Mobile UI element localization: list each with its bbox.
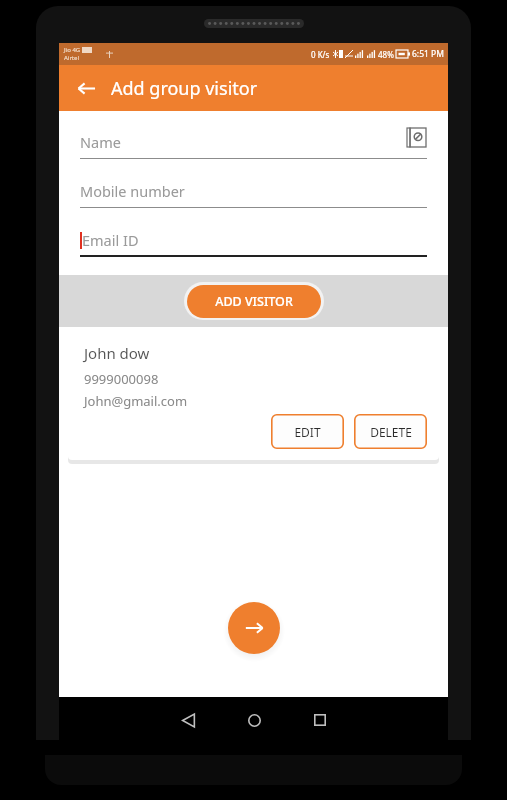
button[interactable]: John dow <box>68 332 439 460</box>
staticText: 6:51 PM <box>412 48 444 60</box>
staticText: DELETE <box>370 424 412 440</box>
button[interactable]: Pick contact <box>405 126 427 148</box>
staticText: Airtel <box>64 54 79 62</box>
button[interactable]: ADD VISITOR <box>187 285 321 318</box>
button[interactable]: Home <box>232 698 276 742</box>
staticText: ADD VISITOR <box>215 293 293 310</box>
button[interactable]: EDIT <box>271 414 344 449</box>
button[interactable]: Back <box>69 71 103 105</box>
staticText: John@gmail.com <box>84 392 188 410</box>
button[interactable]: DELETE <box>354 414 427 449</box>
staticText: Email ID <box>82 230 139 250</box>
button[interactable]: Back <box>166 698 210 742</box>
button[interactable]: Email ID <box>80 230 427 257</box>
staticText: John dow <box>84 343 150 363</box>
staticText: 48% <box>378 49 394 60</box>
staticText: Add group visitor <box>111 76 258 101</box>
staticText: 9999000098 <box>84 370 159 388</box>
staticText: 0 K/s <box>311 49 330 60</box>
staticText: Jio 4G <box>64 46 81 54</box>
button[interactable]: Next <box>228 602 280 654</box>
button[interactable]: Recents <box>298 698 342 742</box>
staticText: Name <box>80 132 121 152</box>
staticText: EDIT <box>294 424 321 440</box>
button[interactable]: Mobile number <box>80 181 427 208</box>
staticText: Mobile number <box>80 181 185 201</box>
